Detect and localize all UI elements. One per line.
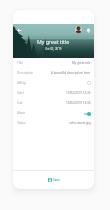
staticText: My great title <box>72 61 91 65</box>
staticText: 10/02/2019 12:36 <box>66 91 91 95</box>
button[interactable]: Title <box>13 58 94 68</box>
staticText: AllDay <box>17 81 26 85</box>
button[interactable]: Start <box>13 88 94 98</box>
staticText: 10/02/2019 13:36 <box>66 101 91 105</box>
staticText: Status <box>17 121 26 125</box>
staticText: End <box>17 101 23 105</box>
button[interactable]: Back <box>15 26 23 34</box>
staticText: Oct 02, 2019 <box>45 47 62 51</box>
staticText: My great title <box>37 38 70 45</box>
button[interactable]: Alarm <box>13 108 94 118</box>
button[interactable]: Description <box>13 68 94 78</box>
button[interactable]: Save <box>45 175 63 185</box>
button[interactable]: AllDay <box>13 78 94 88</box>
staticText: Alarm <box>17 111 26 115</box>
staticText: urho-movie.jpg <box>69 121 91 125</box>
staticText: Start <box>17 91 24 95</box>
staticText: Title <box>17 61 23 65</box>
button[interactable]: Status <box>13 118 94 128</box>
button[interactable]: Notifications <box>84 26 92 34</box>
staticText: A beautiful description here <box>51 71 91 75</box>
button[interactable]: Profile <box>75 26 82 33</box>
button[interactable]: End <box>13 98 94 108</box>
staticText: Description <box>17 71 34 75</box>
staticText: Save <box>53 178 60 182</box>
